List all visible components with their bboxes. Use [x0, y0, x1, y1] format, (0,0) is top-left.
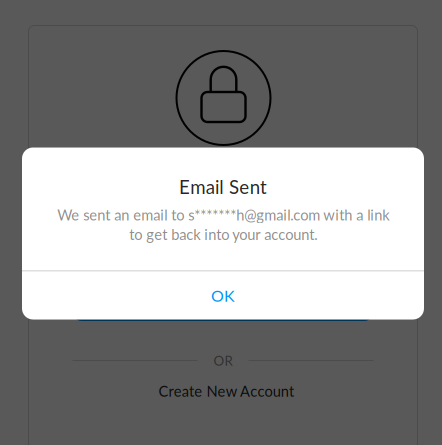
staticText: Email Sent: [179, 175, 267, 198]
staticText: We sent an email to s*******h@gmail.com …: [57, 206, 389, 243]
staticText: OR: [213, 352, 232, 368]
button[interactable]: Create New Account: [158, 382, 294, 400]
button[interactable]: OK: [22, 271, 424, 319]
button[interactable]: [73, 277, 372, 321]
staticText: Create New Account: [158, 382, 294, 400]
staticText: OK: [211, 286, 235, 305]
